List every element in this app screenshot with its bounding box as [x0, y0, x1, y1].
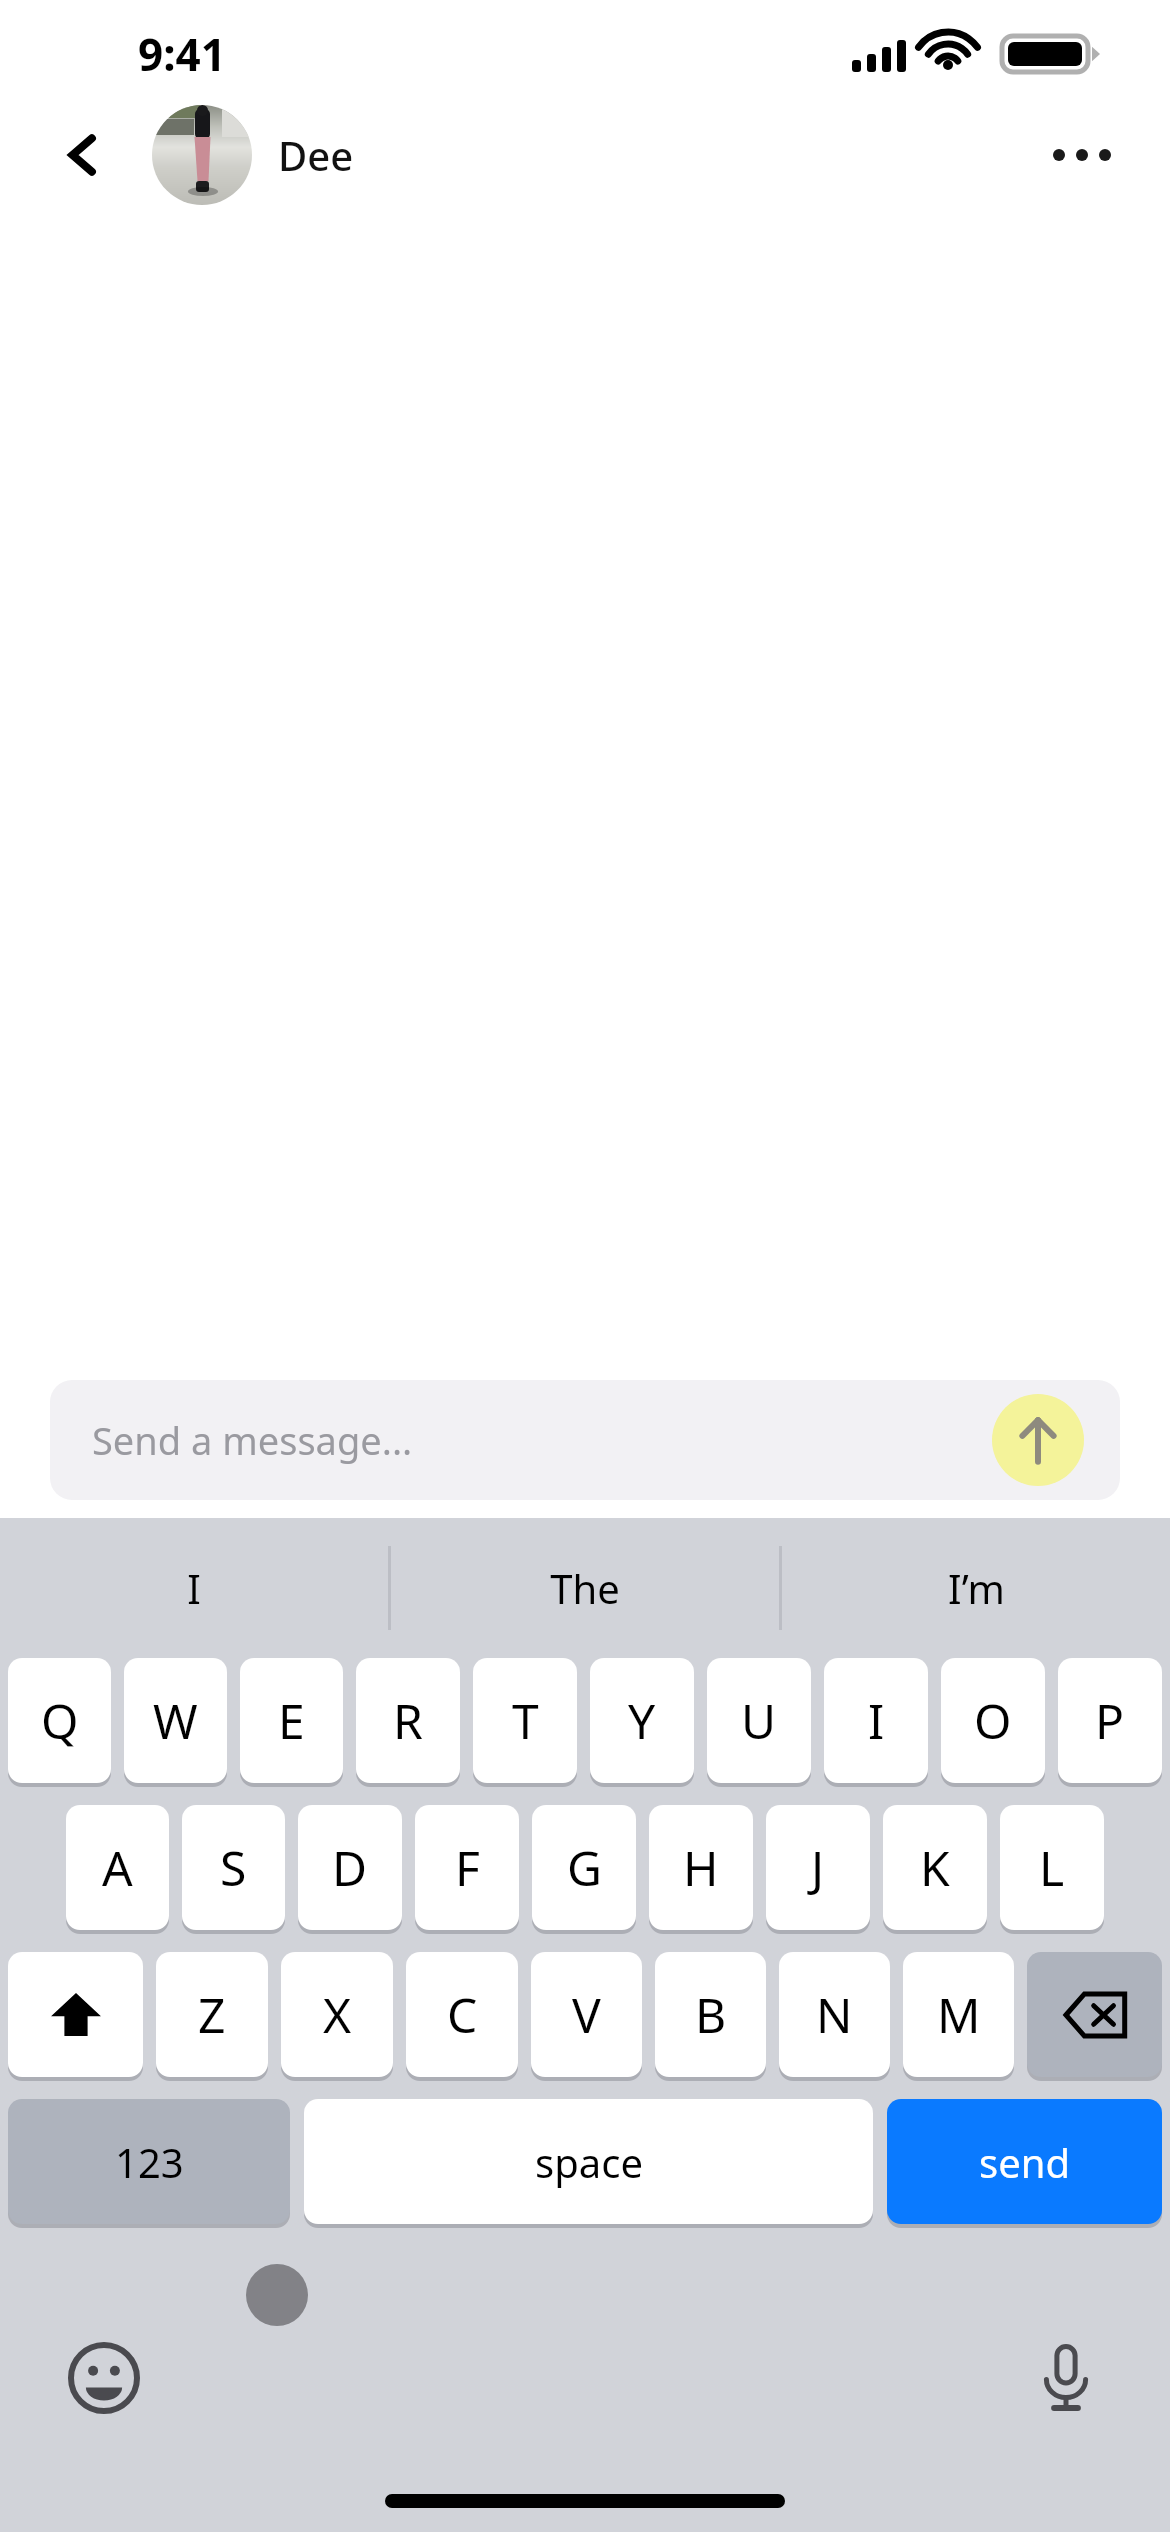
button[interactable]: N	[779, 1952, 890, 2077]
staticText: L	[1039, 1835, 1065, 1900]
button[interactable]: Dictate	[1022, 2334, 1110, 2422]
staticText: Q	[41, 1688, 79, 1753]
staticText: Dee	[278, 128, 354, 182]
button[interactable]: P	[1058, 1658, 1162, 1783]
button[interactable]: O	[941, 1658, 1045, 1783]
button[interactable]: B	[655, 1952, 766, 2077]
button[interactable]: E	[240, 1658, 343, 1783]
button[interactable]: A	[66, 1805, 169, 1930]
staticText: The	[550, 1561, 620, 1615]
staticText: Send a message...	[92, 1414, 413, 1466]
button[interactable]: Y	[590, 1658, 694, 1783]
button[interactable]: Z	[156, 1952, 268, 2077]
staticText: O	[974, 1688, 1012, 1753]
staticText: M	[937, 1982, 981, 2047]
button[interactable]: H	[649, 1805, 753, 1930]
button[interactable]: I’m	[782, 1518, 1170, 1658]
button[interactable]: M	[903, 1952, 1014, 2077]
button[interactable]: Send a message...	[50, 1380, 1120, 1500]
staticText: I’m	[948, 1561, 1005, 1615]
button[interactable]: U	[707, 1658, 811, 1783]
staticText: I	[187, 1561, 201, 1615]
button[interactable]: J	[766, 1805, 870, 1930]
button[interactable]: K	[883, 1805, 987, 1930]
staticText: B	[695, 1982, 727, 2047]
staticText: E	[278, 1688, 305, 1753]
button[interactable]: W	[124, 1658, 227, 1783]
button[interactable]: send	[887, 2099, 1162, 2224]
button[interactable]: T	[473, 1658, 577, 1783]
button[interactable]: 123	[8, 2099, 290, 2224]
button[interactable]: Shift	[8, 1952, 143, 2077]
button[interactable]: I	[0, 1518, 388, 1658]
staticText: D	[332, 1835, 368, 1900]
button[interactable]: I	[824, 1658, 928, 1783]
staticText: U	[741, 1688, 777, 1753]
staticText: Z	[198, 1982, 226, 2047]
button[interactable]: Send	[992, 1394, 1084, 1486]
staticText: send	[979, 2135, 1071, 2189]
staticText: I	[868, 1688, 885, 1753]
button[interactable]: L	[1000, 1805, 1104, 1930]
button[interactable]: Back	[48, 119, 120, 191]
staticText: C	[447, 1982, 478, 2047]
button[interactable]: X	[281, 1952, 393, 2077]
staticText: 123	[115, 2135, 184, 2189]
staticText: Y	[628, 1688, 656, 1753]
button[interactable]: G	[532, 1805, 636, 1930]
staticText: J	[811, 1835, 825, 1900]
staticText: S	[220, 1835, 247, 1900]
button[interactable]: More options	[1042, 115, 1122, 195]
staticText: V	[572, 1982, 601, 2047]
staticText: P	[1095, 1688, 1125, 1753]
staticText: G	[567, 1835, 602, 1900]
staticText: T	[512, 1688, 539, 1753]
staticText: 9:41	[138, 24, 226, 84]
staticText: A	[102, 1835, 133, 1900]
button[interactable]: C	[406, 1952, 518, 2077]
button[interactable]: The	[391, 1518, 779, 1658]
button[interactable]: R	[356, 1658, 460, 1783]
staticText: W	[153, 1688, 198, 1753]
staticText: F	[455, 1835, 480, 1900]
button[interactable]: V	[531, 1952, 642, 2077]
button[interactable]: D	[298, 1805, 402, 1930]
staticText: space	[535, 2135, 643, 2189]
button[interactable]: Q	[8, 1658, 111, 1783]
staticText: R	[393, 1688, 423, 1753]
button[interactable]: Backspace	[1027, 1952, 1162, 2077]
staticText: X	[323, 1982, 352, 2047]
staticText: N	[816, 1982, 853, 2047]
staticText: H	[683, 1835, 719, 1900]
button[interactable]: S	[182, 1805, 285, 1930]
button[interactable]: Dee	[152, 105, 354, 205]
button[interactable]: Emoji	[60, 2334, 148, 2422]
staticText: K	[920, 1835, 950, 1900]
button[interactable]: space	[304, 2099, 873, 2224]
button[interactable]: F	[415, 1805, 519, 1930]
